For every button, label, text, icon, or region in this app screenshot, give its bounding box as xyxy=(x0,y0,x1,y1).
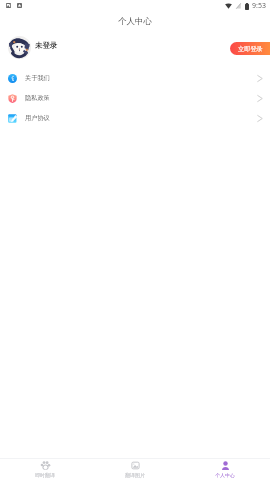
button[interactable]: 头像 xyxy=(0,34,270,60)
button[interactable]: 关于我们 xyxy=(0,67,270,87)
button[interactable]: 立即登录 xyxy=(230,42,270,55)
button[interactable]: 用户协议 xyxy=(0,107,270,127)
staticText: 未登录 xyxy=(35,41,58,50)
staticText: 9:53 xyxy=(252,1,266,11)
staticText: 用户协议 xyxy=(25,114,50,122)
staticText: 个人中心 xyxy=(118,16,152,27)
button[interactable]: 隐私政策 xyxy=(0,87,270,107)
other: 头像 xyxy=(8,36,31,59)
staticText: 翻译图片 xyxy=(125,472,145,478)
staticText: 隐私政策 xyxy=(25,94,50,102)
staticText: 关于我们 xyxy=(25,74,50,82)
button[interactable]: 个人中心 xyxy=(180,459,270,480)
staticText: 即时翻译 xyxy=(35,472,55,478)
button[interactable]: 即时翻译 xyxy=(0,459,90,480)
staticText: 立即登录 xyxy=(238,45,263,53)
button[interactable]: 翻译图片 xyxy=(90,459,180,480)
staticText: 个人中心 xyxy=(215,472,235,478)
